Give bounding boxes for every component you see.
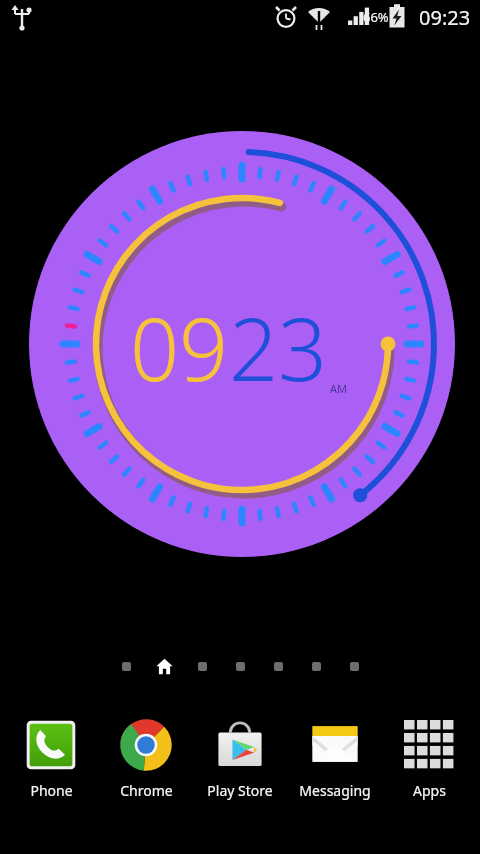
button[interactable]: Page 4 <box>221 655 259 677</box>
button[interactable]: Clock widget <box>0 0 480 854</box>
button[interactable]: Messaging <box>288 714 382 800</box>
button[interactable]: Page 1 <box>107 655 145 677</box>
staticText: 23 <box>229 289 328 406</box>
staticText: Phone <box>30 781 73 800</box>
staticText: 66% <box>363 8 389 26</box>
button[interactable]: Page 5 <box>259 655 297 677</box>
button[interactable]: Home page <box>145 655 183 677</box>
staticText: Apps <box>413 781 446 800</box>
staticText: 09 <box>130 289 229 406</box>
staticText: 09:23 <box>419 4 471 31</box>
button[interactable]: Chrome <box>99 714 193 800</box>
button[interactable]: Phone <box>4 714 98 800</box>
button[interactable]: Page 7 <box>335 655 373 677</box>
staticText: Messaging <box>299 781 371 800</box>
button[interactable]: Page 3 <box>183 655 221 677</box>
staticText: Chrome <box>120 781 173 800</box>
button[interactable]: Page 6 <box>297 655 335 677</box>
button[interactable]: Play Store <box>193 714 287 800</box>
staticText: AM <box>330 381 348 396</box>
staticText: Play Store <box>207 781 273 800</box>
button[interactable]: Apps <box>382 714 476 800</box>
